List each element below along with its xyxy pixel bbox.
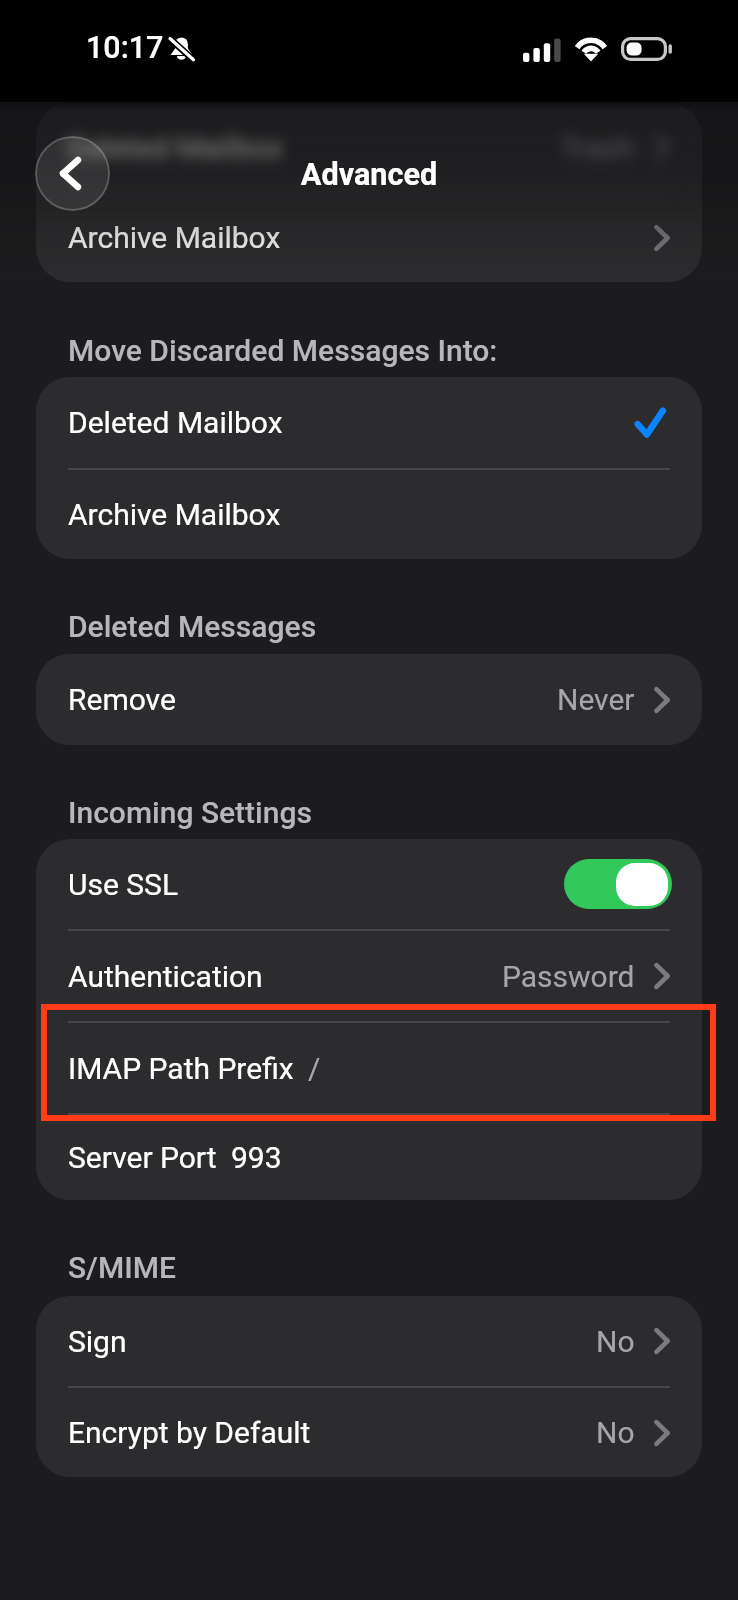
staticText: Deleted Mailbox <box>68 130 283 165</box>
staticText: Archive Mailbox <box>68 220 281 255</box>
staticText: Use SSL <box>68 867 179 902</box>
staticText: Deleted Mailbox <box>68 405 283 440</box>
staticText: No <box>596 1324 635 1359</box>
staticText: Advanced <box>0 157 738 193</box>
staticText: Encrypt by Default <box>68 1415 311 1450</box>
staticText: Trash <box>560 130 635 165</box>
button[interactable]: Server Port <box>36 1115 702 1200</box>
staticText: Authentication <box>68 959 263 994</box>
button[interactable]: Archive Mailbox <box>36 193 702 282</box>
other: Silent mode <box>169 36 194 61</box>
button[interactable]: Remove <box>36 654 702 745</box>
button[interactable]: Deleted Mailbox <box>36 103 702 191</box>
button[interactable]: Authentication <box>36 931 702 1021</box>
staticText: Move Discarded Messages Into: <box>68 333 498 368</box>
staticText: Remove <box>68 682 176 717</box>
staticText: S/MIME <box>68 1250 176 1285</box>
staticText: No <box>596 1415 635 1450</box>
staticText: Incoming Settings <box>68 795 312 830</box>
button[interactable]: Deleted Mailbox <box>36 377 702 468</box>
staticText: IMAP Path Prefix <box>68 1051 294 1086</box>
staticText: Sign <box>68 1324 127 1359</box>
staticText: / <box>308 1051 321 1086</box>
staticText: Server Port <box>68 1140 217 1175</box>
staticText: Archive Mailbox <box>68 497 281 532</box>
button[interactable]: Back <box>35 136 110 211</box>
button[interactable]: IMAP Path Prefix <box>36 1023 702 1113</box>
button[interactable]: Archive Mailbox <box>36 470 702 559</box>
staticText: 10:17 <box>86 30 164 66</box>
staticText: 993 <box>231 1140 282 1175</box>
button[interactable]: Sign <box>36 1296 702 1386</box>
button[interactable]: Encrypt by Default <box>36 1388 702 1477</box>
staticText: Never <box>557 682 635 717</box>
staticText: Password <box>502 959 635 994</box>
staticText: Deleted Messages <box>68 609 317 644</box>
button[interactable]: Use SSL <box>36 839 702 929</box>
button[interactable]: Use SSL toggle <box>564 859 672 909</box>
